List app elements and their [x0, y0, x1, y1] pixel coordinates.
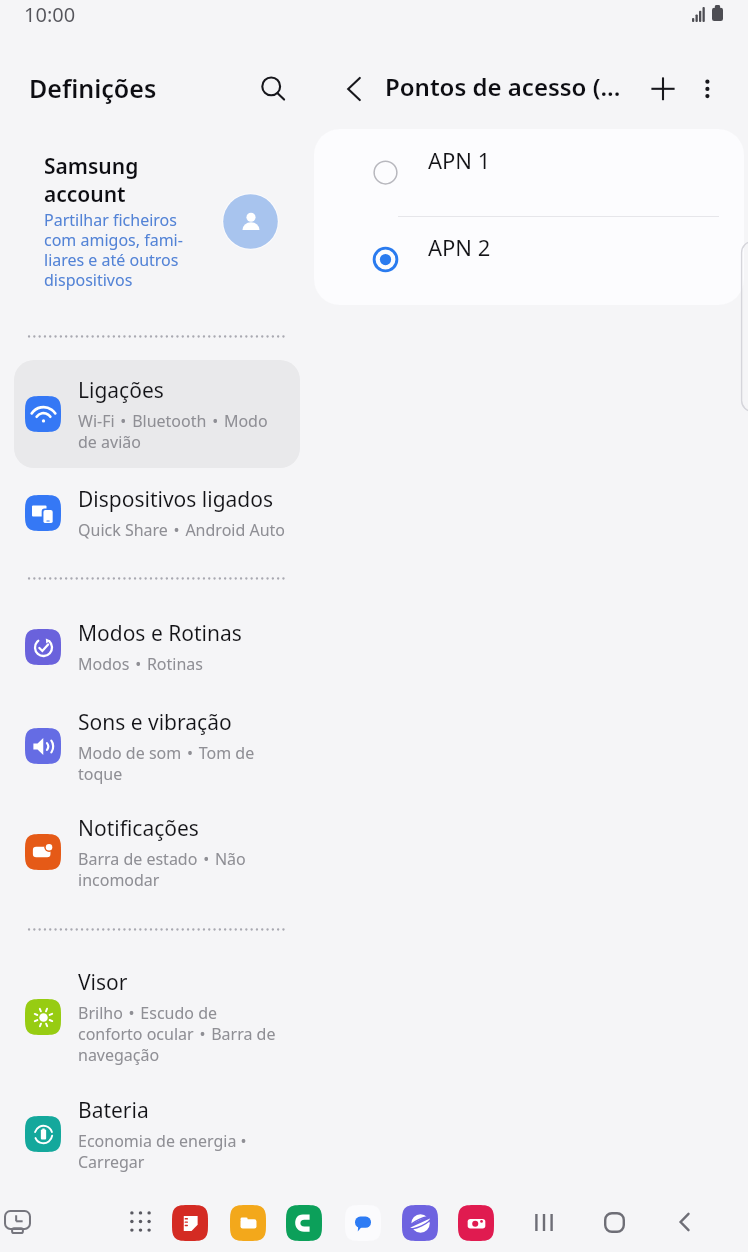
button[interactable]: Mensagens — [345, 1205, 381, 1241]
button[interactable]: APN 2 — [314, 216, 744, 303]
staticText: Partilhar ficheiros com amigos, fami- li… — [44, 209, 183, 291]
staticText: 10:00 — [24, 1, 76, 28]
staticText: Modos e Rotinas — [78, 619, 242, 648]
staticText: Samsung account — [44, 152, 139, 208]
staticText: Brilho • Escudo de conforto ocular • Bar… — [78, 1002, 276, 1066]
staticText: Modo de som • Tom de toque — [78, 742, 255, 785]
button[interactable]: Modos e Rotinas — [14, 603, 300, 690]
button[interactable]: Voltar — [663, 1200, 707, 1244]
staticText: Modos • Rotinas — [78, 653, 203, 675]
button[interactable]: Os Meus Ficheiros — [230, 1205, 266, 1241]
button[interactable]: Notificações — [14, 798, 300, 906]
button[interactable]: Samsung account — [14, 135, 300, 310]
button[interactable]: Bateria — [14, 1080, 300, 1188]
button[interactable]: Mais opções — [684, 64, 732, 112]
staticText: Notificações — [78, 814, 199, 843]
button[interactable]: Visor — [14, 952, 300, 1081]
button[interactable]: Internet — [402, 1205, 438, 1241]
staticText: Ligações — [78, 376, 164, 405]
button[interactable]: Notas — [172, 1205, 208, 1241]
button[interactable]: Ligações — [14, 360, 300, 468]
button[interactable]: Dispositivos ligados — [14, 469, 300, 556]
button[interactable]: Telefone — [286, 1205, 322, 1241]
button[interactable]: Todas as aplicações — [119, 1200, 162, 1243]
button[interactable]: Sons e vibração — [14, 692, 300, 800]
staticText: Bateria — [78, 1096, 149, 1125]
button[interactable]: Painel de apps — [1, 1206, 33, 1238]
staticText: APN 1 — [428, 145, 491, 175]
staticText: Dispositivos ligados — [78, 485, 274, 514]
staticText: Visor — [78, 968, 128, 997]
button[interactable]: APN 1 — [314, 129, 744, 216]
button[interactable]: Adicionar — [639, 65, 687, 113]
staticText: Barra de estado • Não incomodar — [78, 848, 246, 891]
staticText: APN 2 — [428, 232, 491, 262]
button[interactable]: Início — [592, 1200, 636, 1244]
button[interactable]: Anterior — [323, 64, 371, 112]
button[interactable]: Câmara — [458, 1205, 494, 1241]
staticText: Wi-Fi • Bluetooth • Modo de avião — [78, 410, 268, 453]
button[interactable]: Pesquisar — [248, 63, 296, 111]
button[interactable]: Painel lateral — [741, 241, 748, 412]
staticText: Pontos de acesso (... — [385, 70, 621, 103]
button[interactable]: Recentes — [522, 1200, 566, 1244]
staticText: Definições — [29, 71, 157, 105]
staticText: Sons e vibração — [78, 708, 232, 737]
staticText: Quick Share • Android Auto — [78, 519, 286, 541]
staticText: Economia de energia • Carregar — [78, 1130, 247, 1173]
